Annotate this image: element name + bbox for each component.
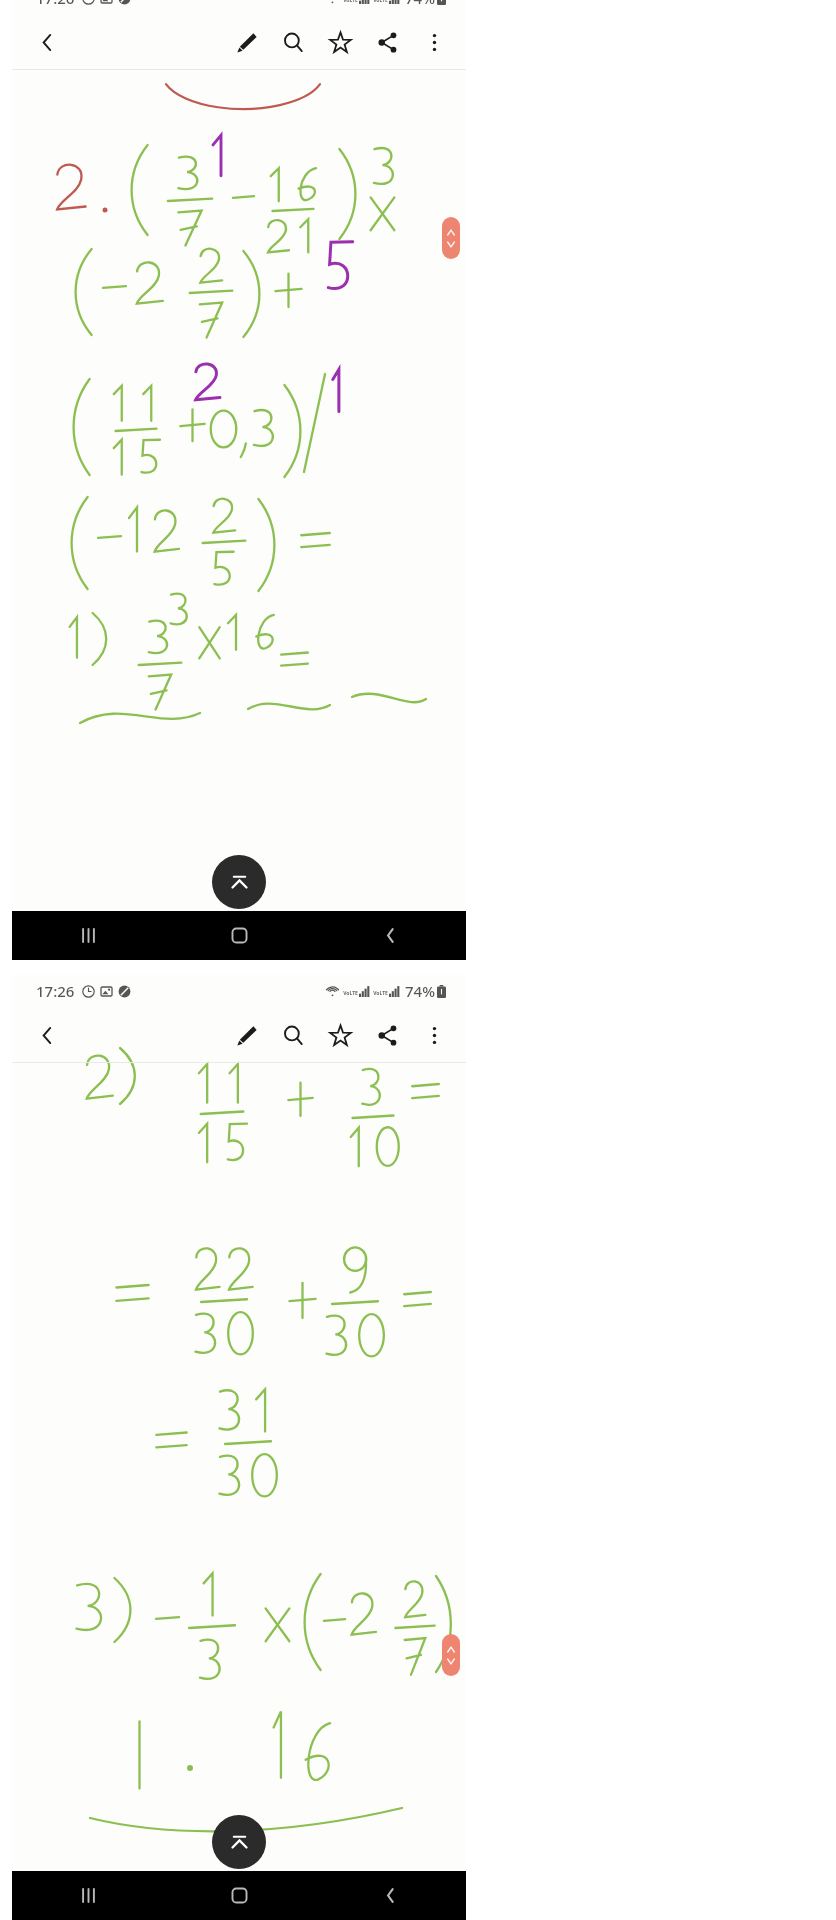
button[interactable]: Edit xyxy=(223,17,270,67)
button[interactable]: Favorite xyxy=(317,17,364,67)
button[interactable]: Recent apps xyxy=(12,911,164,960)
button[interactable]: Share xyxy=(364,17,411,67)
button[interactable]: Back xyxy=(24,19,70,65)
staticText: VoLTE xyxy=(373,0,388,4)
staticText: 74% xyxy=(405,981,435,1001)
button[interactable]: Scroll to top xyxy=(212,1815,266,1869)
staticText: VoLTE xyxy=(343,0,358,4)
button[interactable]: Scroll to top xyxy=(212,855,266,909)
button[interactable]: More options xyxy=(411,1010,458,1060)
button[interactable]: Edit xyxy=(223,1010,270,1060)
button[interactable]: More options xyxy=(411,17,458,67)
button[interactable]: Search xyxy=(270,1010,317,1060)
button[interactable]: Scroll handle xyxy=(442,1634,460,1676)
button[interactable]: Home xyxy=(164,911,315,960)
button[interactable]: Back xyxy=(315,1871,466,1920)
button[interactable]: Favorite xyxy=(317,1010,364,1060)
button[interactable]: Recent apps xyxy=(12,1871,164,1920)
button[interactable]: Back xyxy=(24,1012,70,1058)
staticText: VoLTE xyxy=(373,990,388,997)
button[interactable]: Search xyxy=(270,17,317,67)
button[interactable]: Home xyxy=(164,1871,315,1920)
staticText: 17:26 xyxy=(36,0,75,8)
button[interactable]: Share xyxy=(364,1010,411,1060)
button[interactable]: Back xyxy=(315,911,466,960)
staticText: 74% xyxy=(405,0,435,8)
staticText: VoLTE xyxy=(343,990,358,997)
staticText: 17:26 xyxy=(36,981,75,1001)
button[interactable]: Scroll handle xyxy=(442,217,460,259)
